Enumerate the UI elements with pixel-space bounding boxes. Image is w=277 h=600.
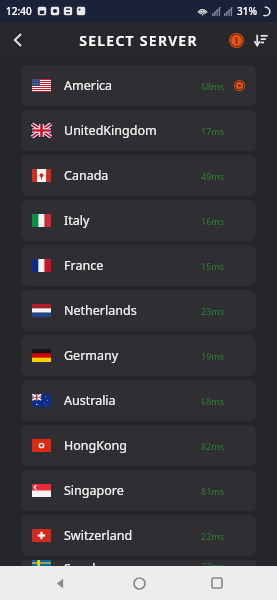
staticText: 68ms [201,395,225,407]
staticText: Sweden [64,560,111,566]
button[interactable]: Switzerland [21,515,256,556]
staticText: America [64,77,113,94]
staticText: SELECT SERVER [79,31,198,50]
button[interactable]: Netherlands [21,290,256,331]
button[interactable]: Current server [225,29,247,51]
button[interactable]: Singapore [21,470,256,511]
staticText: Italy [64,212,90,229]
button[interactable]: Back [41,566,79,600]
button[interactable]: Back [0,22,36,58]
button[interactable]: UnitedKingdom [21,110,256,151]
staticText: 31% [237,4,257,18]
staticText: Singapore [64,482,124,499]
button[interactable]: Recent apps [198,566,236,600]
staticText: 22ms [201,530,225,542]
staticText: 81ms [201,485,225,497]
button[interactable]: America [21,65,256,106]
staticText: 19ms [201,350,225,362]
staticText: 12:40 [6,4,32,18]
staticText: HongKong [64,437,127,454]
button[interactable]: Sweden [21,560,256,566]
staticText: 23ms [201,305,225,317]
staticText: 15ms [201,260,225,272]
button[interactable]: Germany [21,335,256,376]
button[interactable]: Canada [21,155,256,196]
button[interactable]: Italy [21,200,256,241]
button[interactable]: Home [120,566,158,600]
staticText: Canada [64,167,109,184]
button[interactable]: France [21,245,256,286]
staticText: Netherlands [64,302,137,319]
staticText: UnitedKingdom [64,122,157,139]
staticText: Australia [64,392,116,409]
staticText: Germany [64,347,119,364]
staticText: 17ms [201,125,225,137]
staticText: 49ms [201,170,225,182]
button[interactable]: Sort [249,29,271,51]
staticText: 16ms [201,215,225,227]
staticText: France [64,257,104,274]
staticText: 82ms [201,440,225,452]
button[interactable]: Australia [21,380,256,421]
staticText: Switzerland [64,527,133,544]
staticText: 33ms [201,560,225,566]
button[interactable]: HongKong [21,425,256,466]
staticText: 68ms [201,80,225,92]
